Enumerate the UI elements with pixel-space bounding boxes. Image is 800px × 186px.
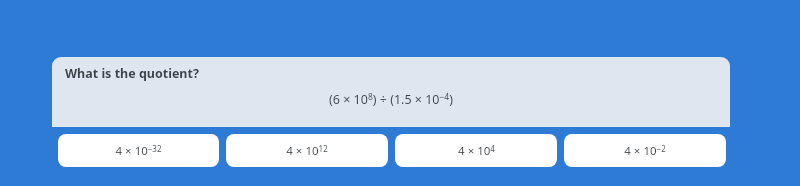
staticText: 4 × 104	[458, 143, 495, 159]
staticText: 4 × 10−32	[115, 143, 162, 159]
staticText: 4 × 10−2	[624, 143, 666, 159]
button[interactable]: 4 × 10−2	[564, 134, 726, 167]
button[interactable]: 4 × 10−32	[58, 134, 219, 167]
button[interactable]: 4 × 1012	[226, 134, 388, 167]
button[interactable]: 4 × 104	[395, 134, 557, 167]
staticText: 4 × 1012	[286, 143, 328, 159]
staticText: What is the quotient?	[65, 65, 199, 82]
staticText: (6 × 108) ÷ (1.5 × 10−4)	[329, 91, 453, 108]
